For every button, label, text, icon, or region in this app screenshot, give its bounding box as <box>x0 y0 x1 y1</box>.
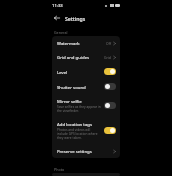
button[interactable]: Add location tags <box>52 117 120 144</box>
button[interactable]: Toggle on <box>104 68 116 75</box>
button[interactable]: Toggle off <box>104 83 116 90</box>
staticText: Grid and guides <box>57 54 90 60</box>
button[interactable]: Shutter sound <box>52 79 120 94</box>
staticText: Save selfies as they appear in the viewf… <box>57 105 101 113</box>
staticText: Preserve settings <box>57 148 92 154</box>
staticText: Mirror selfie <box>57 98 82 104</box>
staticText: Settings <box>65 15 86 22</box>
staticText: Level <box>57 69 68 75</box>
button[interactable]: Mirror selfie <box>52 94 120 117</box>
staticText: Grid <box>104 55 111 60</box>
staticText: Off <box>106 41 111 46</box>
button[interactable]: Back <box>52 13 62 23</box>
button[interactable]: Preserve settings <box>52 144 120 158</box>
button[interactable]: Watermark <box>52 36 120 50</box>
button[interactable]: Grid and guides <box>52 50 120 64</box>
staticText: Shutter sound <box>57 84 86 90</box>
button[interactable]: Toggle off <box>104 102 116 109</box>
staticText: Watermark <box>57 40 80 46</box>
staticText: Photo <box>54 167 65 172</box>
staticText: 11:33 <box>52 3 63 9</box>
staticText: Photos and videos will include GPS locat… <box>57 128 101 140</box>
button[interactable]: Level <box>52 64 120 79</box>
staticText: Add location tags <box>57 121 93 127</box>
staticText: General <box>54 30 68 35</box>
button[interactable]: Toggle on <box>104 127 116 134</box>
